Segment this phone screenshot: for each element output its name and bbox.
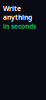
staticText: in seconds (3, 22, 36, 31)
staticText: Write anything (3, 4, 32, 22)
